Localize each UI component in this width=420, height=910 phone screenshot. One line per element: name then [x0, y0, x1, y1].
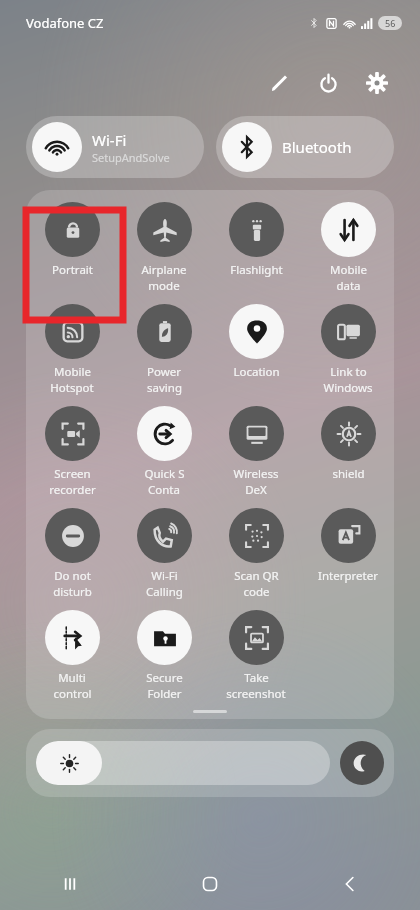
button[interactable]: Recents	[0, 858, 140, 910]
staticText: Wi-Fi	[92, 130, 127, 150]
staticText: Power	[147, 364, 181, 380]
staticText: Portrait	[52, 262, 93, 278]
staticText: disturb	[53, 584, 92, 600]
button[interactable]: Screen	[26, 402, 118, 502]
button[interactable]: Power	[118, 300, 210, 400]
staticText: code	[243, 584, 270, 600]
staticText: Link to	[330, 364, 367, 380]
button[interactable]: Brightness	[36, 741, 330, 785]
staticText: Flashlight	[230, 262, 283, 278]
button[interactable]: Wireless	[210, 402, 302, 502]
staticText: shield	[332, 466, 365, 482]
button[interactable]: Power	[307, 62, 349, 104]
staticText: Mobile	[330, 262, 367, 278]
staticText: data	[336, 278, 361, 294]
button[interactable]: shield	[302, 402, 394, 486]
staticText: 56	[385, 17, 396, 29]
staticText: Multi	[58, 670, 86, 686]
button[interactable]: Settings	[356, 62, 398, 104]
button[interactable]: Link to	[302, 300, 394, 400]
staticText: SetupAndSolve	[92, 150, 170, 165]
button[interactable]: Quick S	[118, 402, 210, 502]
staticText: Mobile	[54, 364, 91, 380]
button[interactable]: Portrait	[26, 198, 118, 282]
staticText: Take	[244, 670, 269, 686]
button[interactable]: Flashlight	[210, 198, 302, 282]
button[interactable]: Airplane	[118, 198, 210, 298]
staticText: Windows	[323, 380, 373, 396]
staticText: mode	[148, 278, 180, 294]
staticText: Wi-Fi	[151, 568, 178, 584]
staticText: Folder	[147, 686, 182, 702]
button[interactable]: Edit	[258, 62, 300, 104]
staticText: Conta	[148, 482, 180, 498]
staticText: Airplane	[141, 262, 187, 278]
button[interactable]: Wi-Fi	[26, 116, 204, 178]
staticText: Quick S	[144, 466, 185, 482]
button[interactable]: Take	[210, 606, 302, 706]
staticText: Secure	[146, 670, 183, 686]
button[interactable]: Secure	[118, 606, 210, 706]
staticText: Wireless	[233, 466, 279, 482]
button[interactable]: Mobile	[26, 300, 118, 400]
staticText: Vodafone CZ	[26, 14, 104, 32]
staticText: Calling	[146, 584, 183, 600]
button[interactable]: Back	[280, 858, 420, 910]
staticText: DeX	[245, 482, 267, 498]
staticText: Hotspot	[50, 380, 94, 396]
button[interactable]: Interpreter	[302, 504, 394, 588]
staticText: Location	[233, 364, 280, 380]
staticText: control	[53, 686, 92, 702]
button[interactable]: Mobile	[302, 198, 394, 298]
button[interactable]: Do not	[26, 504, 118, 604]
button[interactable]: Scan QR	[210, 504, 302, 604]
staticText: Screen	[54, 466, 91, 482]
button[interactable]: Dark mode	[340, 741, 384, 785]
button[interactable]: Multi	[26, 606, 118, 706]
button[interactable]: Wi-Fi	[118, 504, 210, 604]
staticText: Do not	[54, 568, 91, 584]
button[interactable]: Location	[210, 300, 302, 384]
staticText: Bluetooth	[282, 137, 352, 157]
staticText: saving	[147, 380, 182, 396]
button[interactable]: Home	[140, 858, 280, 910]
staticText: recorder	[49, 482, 96, 498]
staticText: Interpreter	[318, 568, 378, 584]
staticText: Scan QR	[234, 568, 279, 584]
staticText: screenshot	[226, 686, 286, 702]
button[interactable]: Bluetooth	[216, 116, 394, 178]
